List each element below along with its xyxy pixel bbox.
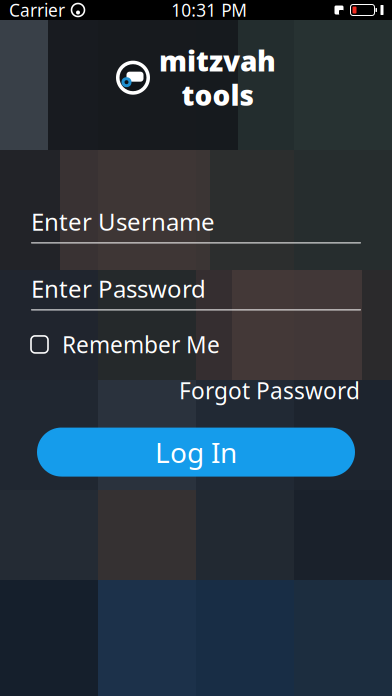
button[interactable]: Log In xyxy=(37,428,355,477)
staticText: Enter Password xyxy=(31,272,206,304)
staticText: Log In xyxy=(155,433,237,471)
staticText: Remember Me xyxy=(62,329,220,359)
button[interactable]: Forgot Password xyxy=(179,370,360,411)
staticText: Enter Username xyxy=(31,205,215,237)
staticText: mitzvah xyxy=(159,42,276,79)
button[interactable]: Remember Me xyxy=(31,324,220,364)
staticText: Forgot Password xyxy=(179,375,360,406)
staticText: 10:31 PM xyxy=(171,0,247,21)
staticText: Carrier xyxy=(9,0,65,21)
staticText: tools xyxy=(181,76,253,113)
